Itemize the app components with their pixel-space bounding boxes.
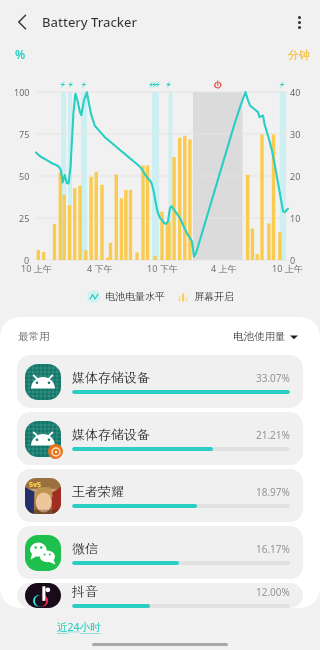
- button[interactable]: 微信: [17, 526, 303, 579]
- staticText: 16.17%: [256, 542, 290, 556]
- staticText: 20: [290, 170, 301, 182]
- button[interactable]: 媒体存储设备: [17, 355, 303, 408]
- staticText: 媒体存储设备: [72, 426, 150, 442]
- staticText: 近24小时: [57, 620, 101, 634]
- staticText: 100: [14, 86, 30, 98]
- staticText: 21.21%: [256, 428, 290, 442]
- staticText: 30: [290, 128, 301, 140]
- staticText: 25: [19, 212, 30, 224]
- staticText: 75: [19, 128, 30, 140]
- staticText: 最常用: [18, 330, 50, 343]
- staticText: %: [15, 46, 26, 62]
- button[interactable]: More options: [282, 5, 316, 39]
- button[interactable]: 电池使用量: [233, 330, 298, 343]
- button[interactable]: Back: [5, 5, 39, 39]
- staticText: 微信: [72, 540, 98, 556]
- staticText: 屏幕开启: [194, 290, 234, 303]
- staticText: 33.07%: [256, 371, 290, 385]
- staticText: 媒体存储设备: [72, 369, 150, 385]
- button[interactable]: 5v5: [17, 469, 303, 522]
- staticText: Battery Tracker: [42, 13, 138, 31]
- staticText: 10: [290, 212, 301, 224]
- staticText: 抖音: [72, 583, 98, 599]
- staticText: 18.97%: [256, 485, 290, 499]
- staticText: 分钟: [288, 48, 310, 62]
- staticText: 4 上午: [211, 262, 237, 274]
- staticText: 电池电量水平: [105, 290, 165, 303]
- button[interactable]: 抖音: [17, 583, 303, 608]
- staticText: 10 上午: [21, 262, 52, 274]
- staticText: 50: [19, 170, 30, 182]
- staticText: 0: [24, 254, 30, 266]
- button[interactable]: 近24小时: [52, 618, 106, 636]
- staticText: 10 上午: [272, 262, 303, 274]
- staticText: 王者荣耀: [72, 483, 124, 499]
- staticText: 10 下午: [147, 262, 178, 274]
- staticText: 40: [290, 86, 301, 98]
- staticText: 0: [290, 254, 296, 266]
- staticText: 4 下午: [87, 262, 113, 274]
- button[interactable]: 媒体存储设备: [17, 412, 303, 465]
- staticText: 电池使用量: [233, 330, 286, 343]
- staticText: 12.00%: [256, 585, 290, 599]
- staticText: 5v5: [29, 480, 42, 490]
